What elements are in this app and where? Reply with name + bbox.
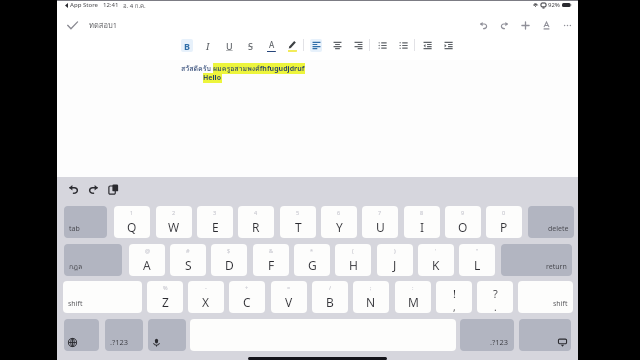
button[interactable]: & bbox=[253, 244, 289, 276]
staticText: & bbox=[269, 247, 274, 254]
button[interactable]: Paste bbox=[103, 179, 123, 199]
button[interactable]: Dictate bbox=[148, 319, 186, 351]
staticText: M bbox=[408, 294, 419, 310]
button[interactable]: shift bbox=[63, 281, 142, 313]
button[interactable]: ! bbox=[436, 281, 472, 313]
staticText: ผมครูอสามพงศ์fhfugudjdruf bbox=[213, 63, 305, 74]
staticText: * bbox=[310, 247, 314, 254]
staticText: I bbox=[420, 219, 425, 235]
staticText: , bbox=[453, 300, 456, 313]
staticText: A bbox=[143, 257, 151, 273]
button[interactable]: ( bbox=[335, 244, 371, 276]
staticText: 2 bbox=[172, 209, 176, 216]
button[interactable]: Undo bbox=[63, 179, 83, 199]
button[interactable]: Increase indent bbox=[437, 33, 458, 57]
staticText: 9 bbox=[461, 209, 465, 216]
button[interactable]: Add bbox=[515, 15, 536, 35]
button[interactable]: Align right bbox=[347, 33, 368, 57]
button[interactable]: Italic bbox=[197, 33, 218, 57]
staticText: H bbox=[349, 257, 358, 273]
staticText: Y bbox=[336, 219, 343, 235]
button[interactable]: Numbered list bbox=[392, 33, 413, 57]
button[interactable]: .?123 bbox=[105, 319, 143, 351]
button[interactable]: .?123 bbox=[460, 319, 514, 351]
staticText: .?123 bbox=[490, 337, 509, 347]
button[interactable]: Undo bbox=[473, 15, 494, 35]
button[interactable]: 5 bbox=[280, 206, 316, 238]
button[interactable]: Underline bbox=[218, 33, 239, 57]
button[interactable]: ; bbox=[353, 281, 389, 313]
button[interactable]: Change keyboard bbox=[64, 319, 99, 351]
staticText: Hello bbox=[203, 73, 222, 83]
button[interactable]: + bbox=[229, 281, 265, 313]
button[interactable]: Strikethrough bbox=[239, 33, 260, 57]
button[interactable]: Bulleted list bbox=[371, 33, 392, 57]
button[interactable]: % bbox=[147, 281, 183, 313]
button[interactable]: - bbox=[188, 281, 224, 313]
button[interactable]: 1 bbox=[114, 206, 150, 238]
button[interactable]: Highlight colour bbox=[281, 33, 302, 57]
button[interactable]: tab bbox=[64, 206, 107, 238]
button[interactable]: 2 bbox=[156, 206, 192, 238]
button[interactable]: More options bbox=[557, 15, 578, 35]
button[interactable]: @ bbox=[129, 244, 165, 276]
staticText: กฎล bbox=[69, 261, 83, 272]
button[interactable]: delete bbox=[528, 206, 574, 238]
staticText: A bbox=[269, 39, 275, 50]
staticText: % bbox=[163, 284, 168, 291]
button[interactable]: 8 bbox=[404, 206, 440, 238]
staticText: ! bbox=[453, 286, 456, 301]
button[interactable]: Text colour bbox=[260, 33, 281, 57]
staticText: S bbox=[248, 40, 253, 52]
button[interactable]: " bbox=[459, 244, 495, 276]
button[interactable]: Redo bbox=[494, 15, 515, 35]
button[interactable]: 9 bbox=[445, 206, 481, 238]
button[interactable]: ? bbox=[477, 281, 513, 313]
staticText: K bbox=[432, 257, 440, 273]
button[interactable]: * bbox=[294, 244, 330, 276]
staticText: : bbox=[412, 284, 414, 291]
staticText: อ. 4 ก.ค. bbox=[123, 1, 146, 9]
button[interactable]: Format bbox=[536, 15, 557, 35]
button[interactable]: : bbox=[395, 281, 431, 313]
button[interactable]: return bbox=[501, 244, 572, 276]
staticText: shift bbox=[553, 299, 568, 309]
button[interactable]: # bbox=[170, 244, 206, 276]
staticText: U bbox=[226, 40, 233, 52]
staticText: @ bbox=[145, 247, 150, 254]
staticText: 1 bbox=[130, 209, 134, 216]
button[interactable]: 4 bbox=[238, 206, 274, 238]
staticText: # bbox=[186, 247, 190, 254]
button[interactable]: Align left bbox=[305, 33, 326, 57]
button[interactable]: ' bbox=[418, 244, 454, 276]
button[interactable]: 0 bbox=[486, 206, 522, 238]
staticText: D bbox=[225, 257, 234, 273]
staticText: C bbox=[243, 294, 251, 310]
staticText: I bbox=[206, 40, 210, 52]
button[interactable]: Align centre bbox=[326, 33, 347, 57]
button[interactable]: Decrease indent bbox=[416, 33, 437, 57]
button[interactable]: 3 bbox=[197, 206, 233, 238]
staticText: G bbox=[308, 257, 317, 273]
staticText: V bbox=[285, 294, 293, 310]
staticText: P bbox=[500, 219, 508, 235]
button[interactable]: ) bbox=[377, 244, 413, 276]
staticText: ทดสอบ1 bbox=[89, 19, 117, 31]
button[interactable]: 7 bbox=[362, 206, 398, 238]
button[interactable]: $ bbox=[211, 244, 247, 276]
button[interactable]: shift bbox=[518, 281, 573, 313]
staticText: = bbox=[287, 284, 291, 291]
button[interactable]: = bbox=[271, 281, 307, 313]
button[interactable]: / bbox=[312, 281, 348, 313]
staticText: S bbox=[185, 257, 192, 273]
staticText: 5 bbox=[296, 209, 300, 216]
button[interactable]: กฎล bbox=[64, 244, 122, 276]
staticText: B bbox=[326, 294, 334, 310]
button[interactable]: Bold bbox=[176, 33, 197, 57]
button[interactable]: Hide keyboard bbox=[519, 319, 571, 351]
button[interactable]: Redo bbox=[83, 179, 103, 199]
staticText: F bbox=[268, 257, 275, 273]
button[interactable]: 6 bbox=[321, 206, 357, 238]
button[interactable]: Done bbox=[61, 15, 83, 35]
